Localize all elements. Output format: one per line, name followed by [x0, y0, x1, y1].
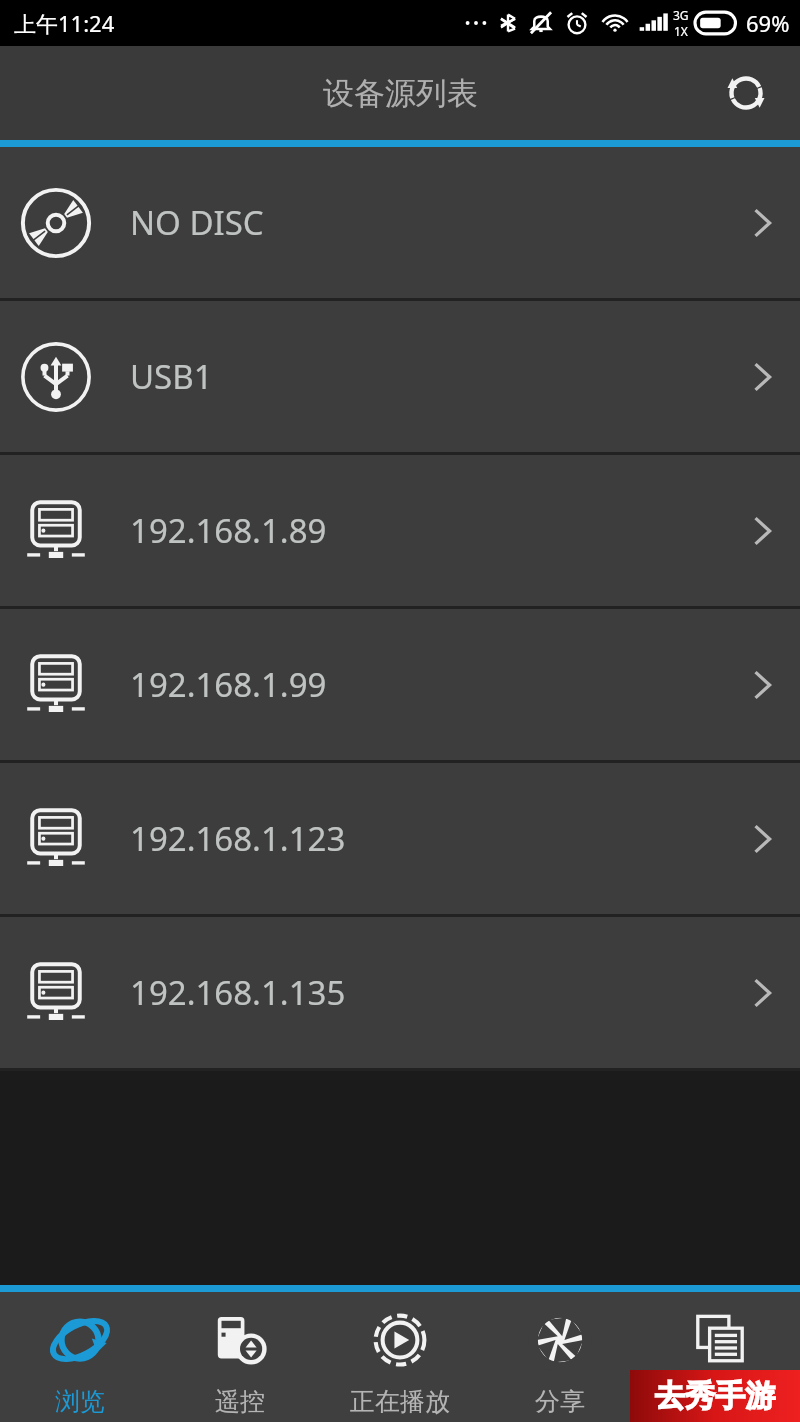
button[interactable]: 192.168.1.135	[0, 917, 800, 1068]
staticText: 设备源列表	[323, 74, 478, 113]
staticText: 1X	[674, 23, 688, 39]
button[interactable]: 192.168.1.89	[0, 455, 800, 606]
button[interactable]: 遥控	[160, 1292, 320, 1422]
staticText: 去秀手游	[655, 1377, 775, 1415]
button[interactable]: 浏览	[0, 1292, 160, 1422]
button[interactable]: USB1	[0, 301, 800, 452]
button[interactable]: Refresh	[714, 61, 778, 125]
staticText: 正在播放	[350, 1386, 450, 1417]
staticText: 遥控	[215, 1386, 265, 1417]
staticText: 上午11:24	[14, 8, 115, 38]
button[interactable]: 文档	[640, 1292, 800, 1422]
staticText: 192.168.1.135	[130, 970, 346, 1015]
staticText: 分享	[535, 1386, 585, 1417]
staticText: 浏览	[55, 1386, 105, 1417]
staticText: 192.168.1.123	[130, 816, 346, 861]
button[interactable]: NO DISC	[0, 147, 800, 298]
staticText: 192.168.1.89	[130, 508, 327, 553]
button[interactable]: 分享	[480, 1292, 640, 1422]
button[interactable]: 192.168.1.99	[0, 609, 800, 760]
staticText: NO DISC	[130, 200, 264, 245]
staticText: USB1	[130, 354, 213, 399]
button[interactable]: 192.168.1.123	[0, 763, 800, 914]
staticText: 3G	[673, 7, 689, 23]
staticText: 192.168.1.99	[130, 662, 327, 707]
button[interactable]: 正在播放	[320, 1292, 480, 1422]
staticText: 69%	[746, 8, 790, 38]
